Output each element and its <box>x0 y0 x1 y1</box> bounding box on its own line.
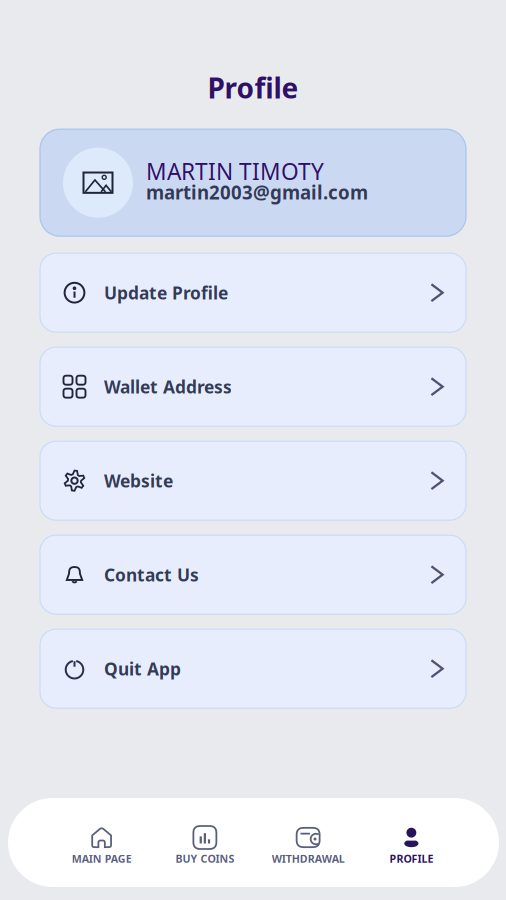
button[interactable]: PROFILE <box>360 817 463 867</box>
staticText: Profile <box>207 69 298 106</box>
staticText: BUY COINS <box>175 851 234 866</box>
staticText: martin2003@gmail.com <box>146 180 368 205</box>
staticText: MARTIN TIMOTY <box>146 156 324 186</box>
button[interactable]: MARTIN TIMOTY <box>40 129 466 236</box>
button[interactable]: BUY COINS <box>153 817 256 867</box>
staticText: WITHDRAWAL <box>272 851 345 866</box>
staticText: Update Profile <box>104 281 228 304</box>
button[interactable]: WITHDRAWAL <box>256 817 360 867</box>
staticText: Quit App <box>104 657 181 680</box>
staticText: Website <box>104 469 173 492</box>
button[interactable]: Wallet Address <box>40 347 466 426</box>
staticText: Contact Us <box>104 563 199 586</box>
button[interactable]: Quit App <box>40 629 466 708</box>
button[interactable]: Website <box>40 441 466 520</box>
staticText: Wallet Address <box>104 375 232 398</box>
button[interactable]: Contact Us <box>40 535 466 614</box>
staticText: PROFILE <box>389 851 433 866</box>
staticText: MAIN PAGE <box>72 851 132 866</box>
button[interactable]: Update Profile <box>40 253 466 332</box>
button[interactable]: MAIN PAGE <box>50 817 153 867</box>
